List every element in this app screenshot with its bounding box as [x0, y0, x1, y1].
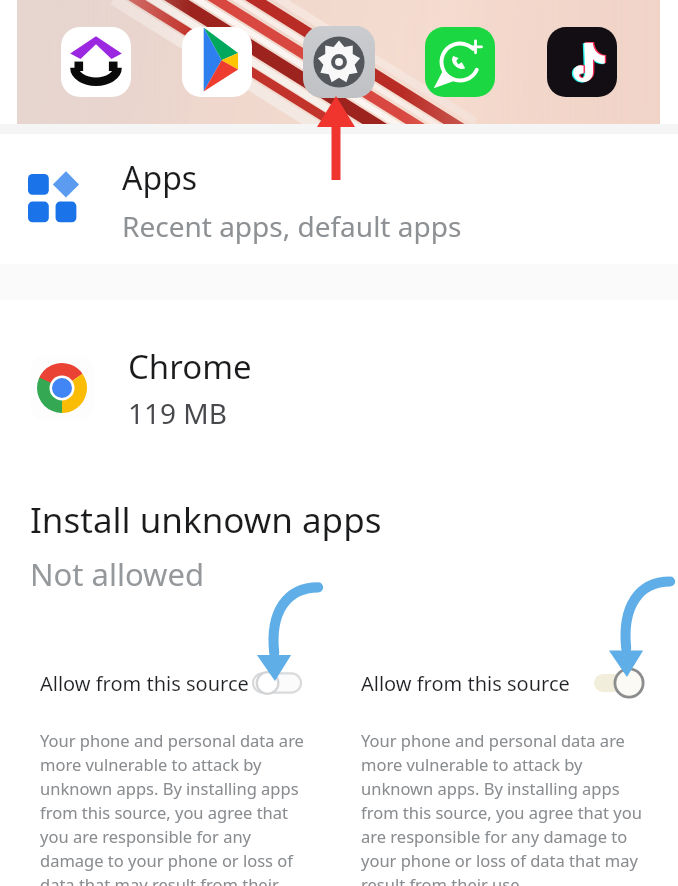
- button[interactable]: Allow from this source: [361, 655, 670, 711]
- staticText: Not allowed: [30, 553, 205, 595]
- other: Pointer to toggle: [601, 572, 673, 678]
- button[interactable]: Uber app: [53, 19, 139, 105]
- button[interactable]: Allow from this source: [40, 655, 331, 711]
- button[interactable]: TikTok: [539, 19, 625, 105]
- other: Pointer to Settings: [316, 96, 356, 180]
- staticText: Your phone and personal data are more vu…: [361, 729, 651, 886]
- staticText: Recent apps, default apps: [122, 207, 462, 245]
- button[interactable]: WhatsApp Business: [417, 19, 503, 105]
- button[interactable]: Apps: [0, 138, 678, 262]
- staticText: Install unknown apps: [30, 496, 382, 544]
- button[interactable]: Settings: [296, 19, 382, 105]
- other: Pointer to toggle: [249, 578, 321, 682]
- button[interactable]: Chrome: [0, 330, 678, 446]
- staticText: 119 MB: [128, 394, 227, 432]
- staticText: Allow from this source: [40, 670, 249, 697]
- staticText: Allow from this source: [361, 670, 570, 697]
- staticText: Your phone and personal data are more vu…: [40, 729, 314, 886]
- button[interactable]: Play Store: [174, 19, 260, 105]
- staticText: Chrome: [128, 344, 252, 389]
- staticText: Apps: [122, 156, 198, 200]
